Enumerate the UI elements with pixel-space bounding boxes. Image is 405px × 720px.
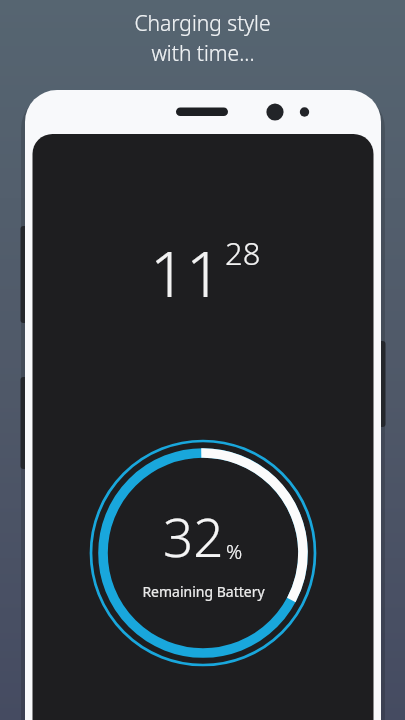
staticText: 28 [225, 232, 261, 274]
staticText: 32 [163, 500, 224, 572]
staticText: 11 [150, 230, 222, 316]
staticText: Remaining Battery [142, 582, 265, 601]
button[interactable]: Remaining battery 32 percent [113, 500, 293, 601]
staticText: Charging style [134, 9, 271, 38]
staticText: with time... [151, 39, 255, 68]
staticText: % [226, 538, 243, 565]
